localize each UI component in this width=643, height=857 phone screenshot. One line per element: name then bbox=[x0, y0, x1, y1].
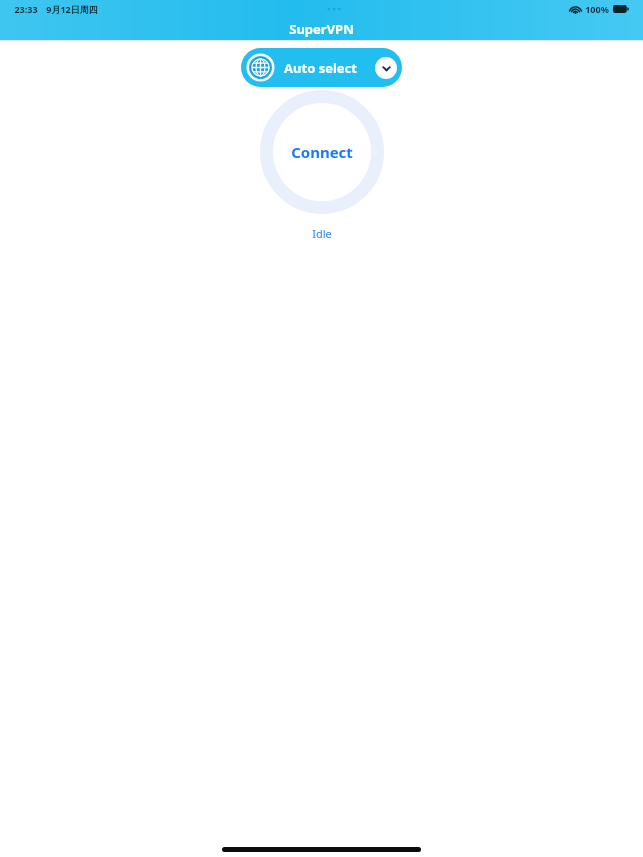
staticText: SuperVPN bbox=[289, 20, 354, 38]
button[interactable]: Auto select bbox=[241, 48, 402, 87]
staticText: 9月12日周四 bbox=[46, 3, 98, 15]
staticText: Auto select bbox=[284, 59, 357, 77]
other: Expand server list bbox=[375, 57, 397, 79]
staticText: Connect bbox=[291, 142, 353, 162]
staticText: 23:33 bbox=[14, 3, 38, 15]
staticText: 100% bbox=[585, 3, 609, 15]
button[interactable]: Connect bbox=[260, 90, 384, 214]
staticText: Idle bbox=[312, 226, 332, 241]
